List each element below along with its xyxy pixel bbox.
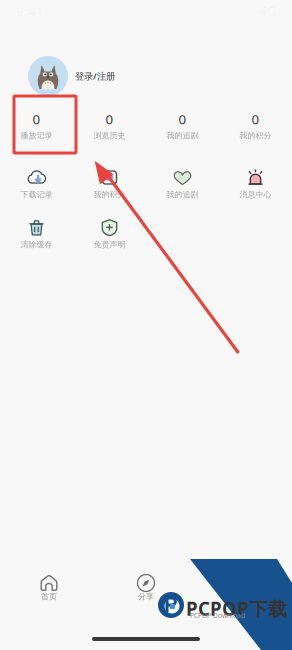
staticText: 0 — [105, 110, 113, 128]
staticText: 登录/注册 — [75, 70, 115, 82]
button[interactable]: 登录/注册 — [0, 56, 292, 96]
staticText: 我的积分 — [239, 131, 271, 140]
staticText: 播放记录 — [20, 131, 52, 140]
staticText: PCPOP下载 — [186, 596, 287, 621]
staticText: 0 — [178, 110, 186, 128]
button[interactable]: 清除缓存 — [0, 216, 73, 249]
staticText: 清除缓存 — [20, 240, 52, 249]
button[interactable]: 我的追剧 — [146, 166, 219, 199]
staticText: PCPOP Download — [190, 611, 245, 620]
staticText: 分享 — [138, 592, 154, 601]
staticText: 消息中心 — [239, 190, 271, 199]
staticText: 首页 — [41, 592, 57, 601]
button[interactable]: 我的积分 — [73, 166, 146, 199]
staticText: 0 — [251, 110, 259, 128]
button[interactable]: 免责声明 — [73, 216, 146, 249]
staticText: 免责声明 — [93, 240, 125, 249]
button[interactable]: 0 — [146, 112, 219, 141]
staticText: 浏览历史 — [93, 131, 125, 140]
button[interactable]: 分享 — [97, 576, 194, 601]
staticText: 0 — [32, 110, 40, 128]
button[interactable]: 0 — [0, 112, 73, 141]
staticText: 下载记录 — [20, 190, 52, 199]
button[interactable]: 0 — [219, 112, 292, 141]
button[interactable]: 消息中心 — [219, 166, 292, 199]
button[interactable]: 我的 — [194, 576, 291, 601]
button[interactable]: 下载记录 — [0, 166, 73, 199]
button[interactable]: 0 — [73, 112, 146, 141]
staticText: 我的积分 — [93, 190, 125, 199]
staticText: 我的追剧 — [166, 131, 198, 140]
button[interactable]: 首页 — [0, 576, 97, 601]
staticText: 我的追剧 — [166, 190, 198, 199]
